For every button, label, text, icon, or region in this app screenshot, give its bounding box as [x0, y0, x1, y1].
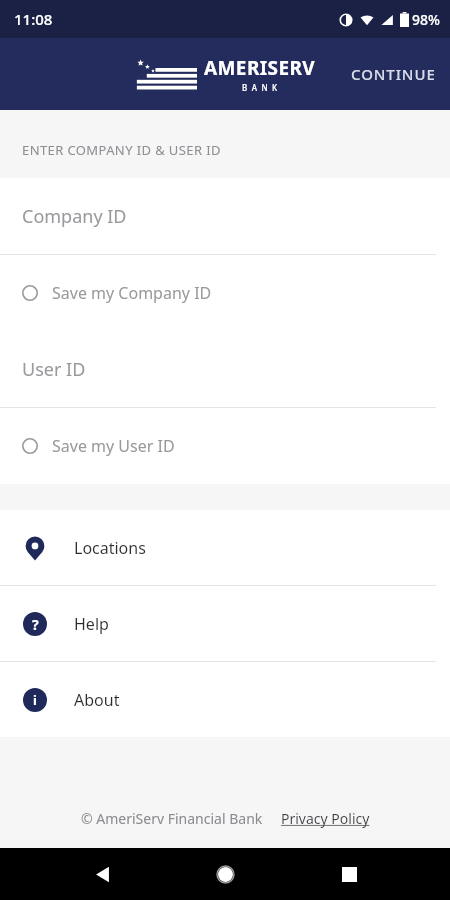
staticText: © AmeriServ Financial Bank [81, 809, 263, 828]
button[interactable]: i [0, 662, 450, 737]
button[interactable]: ? [0, 586, 450, 661]
staticText: B A N K [242, 82, 279, 93]
button[interactable]: User ID [0, 331, 450, 407]
staticText: ENTER COMPANY ID & USER ID [22, 141, 221, 159]
staticText: ? [32, 615, 39, 634]
staticText: Help [74, 613, 109, 635]
button[interactable]: Company ID [0, 178, 450, 254]
staticText: 11:08 [14, 9, 53, 29]
button[interactable]: Recent apps [327, 852, 371, 896]
button[interactable]: Back [80, 852, 124, 896]
staticText: Privacy Policy [281, 809, 370, 828]
button[interactable]: Save my User ID [0, 408, 450, 484]
staticText: AMERISERV [204, 55, 316, 81]
button[interactable]: CONTINUE [337, 50, 450, 98]
staticText: CONTINUE [351, 64, 436, 84]
staticText: Company ID [22, 204, 127, 229]
staticText: Locations [74, 537, 146, 559]
button[interactable]: Locations [0, 510, 450, 585]
staticText: Save my User ID [52, 435, 175, 457]
staticText: About [74, 689, 120, 711]
staticText: User ID [22, 357, 86, 382]
staticText: Save my Company ID [52, 282, 212, 304]
button[interactable]: Privacy Policy [281, 809, 370, 828]
staticText: i [33, 691, 37, 709]
button[interactable]: Save my Company ID [0, 255, 450, 331]
button[interactable]: Home [203, 852, 247, 896]
staticText: 98% [412, 10, 440, 29]
